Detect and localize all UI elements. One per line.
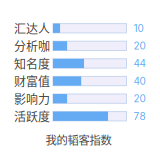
staticText: 知名度 <box>14 55 50 72</box>
staticText: 财富值 <box>14 72 50 90</box>
button[interactable]: 分析咖 <box>0 37 160 55</box>
staticText: 20 <box>133 93 145 105</box>
button[interactable]: 影响力 <box>0 90 160 107</box>
staticText: 44 <box>133 57 145 69</box>
staticText: 影响力 <box>14 90 50 107</box>
staticText: 分析咖 <box>14 37 50 55</box>
staticText: 我的韬客指数 <box>45 131 111 148</box>
staticText: 汇达人 <box>14 20 50 37</box>
button[interactable]: 知名度 <box>0 55 160 72</box>
staticText: 40 <box>133 75 145 87</box>
button[interactable]: 活跃度 <box>0 107 160 125</box>
staticText: 20 <box>133 40 145 52</box>
button[interactable]: 财富值 <box>0 72 160 90</box>
staticText: 活跃度 <box>14 108 50 125</box>
staticText: 10 <box>133 22 143 34</box>
button[interactable]: 汇达人 <box>0 19 160 37</box>
staticText: 78 <box>133 110 145 122</box>
